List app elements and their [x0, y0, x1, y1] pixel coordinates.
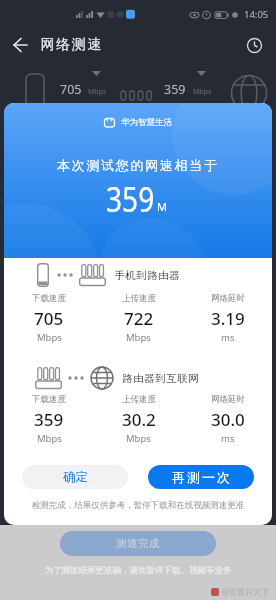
staticText: 722 [124, 307, 154, 330]
staticText: @安置孖天下 [222, 586, 270, 597]
button[interactable]: 再测一次 [148, 465, 254, 489]
staticText: 359 [106, 175, 155, 223]
staticText: 检测完成，结果仅供参考，暂停下载和在线视频测速更准 [4, 500, 272, 511]
staticText: 705 [60, 81, 82, 98]
staticText: 再测一次 [171, 469, 231, 485]
button[interactable]: 确定 [22, 465, 128, 489]
staticText: 359 [34, 408, 64, 431]
staticText: 14:05 [244, 8, 269, 21]
button[interactable] [232, 27, 276, 63]
staticText: 测速完成 [116, 537, 160, 550]
staticText: M [157, 199, 167, 214]
staticText: 下载速度 [32, 293, 66, 304]
staticText: 3.19 [211, 307, 245, 330]
staticText: ms [221, 331, 235, 344]
staticText: 华为智慧生活 [121, 117, 172, 128]
staticText: 下载速度 [32, 394, 66, 405]
staticText: 确定 [63, 469, 88, 485]
staticText: 30.2 [122, 408, 156, 431]
staticText: ms [221, 432, 235, 445]
staticText: 为了测速结果更准确，请先暂停下载、视频等业务 [0, 565, 276, 576]
staticText: Mbps [37, 432, 62, 445]
button[interactable] [0, 27, 40, 63]
staticText: Mbps [126, 432, 151, 445]
staticText: 本次测试您的网速相当于 [57, 157, 219, 173]
staticText: 30.0 [211, 408, 245, 431]
button[interactable]: 测速完成 [60, 531, 216, 556]
staticText: 上传速度 [122, 293, 156, 304]
staticText: Mbps [88, 87, 107, 97]
staticText: 路由器到互联网 [122, 372, 199, 385]
staticText: Mbps [37, 331, 62, 344]
staticText: 网络延时 [211, 394, 245, 405]
staticText: 上传速度 [122, 394, 156, 405]
staticText: 359 [164, 81, 186, 98]
staticText: 705 [34, 307, 64, 330]
staticText: Mbps [193, 87, 212, 97]
staticText: 网络延时 [211, 293, 245, 304]
staticText: Mbps [126, 331, 151, 344]
staticText: 手机到路由器 [114, 269, 180, 282]
staticText: 网络测速 [40, 36, 102, 54]
